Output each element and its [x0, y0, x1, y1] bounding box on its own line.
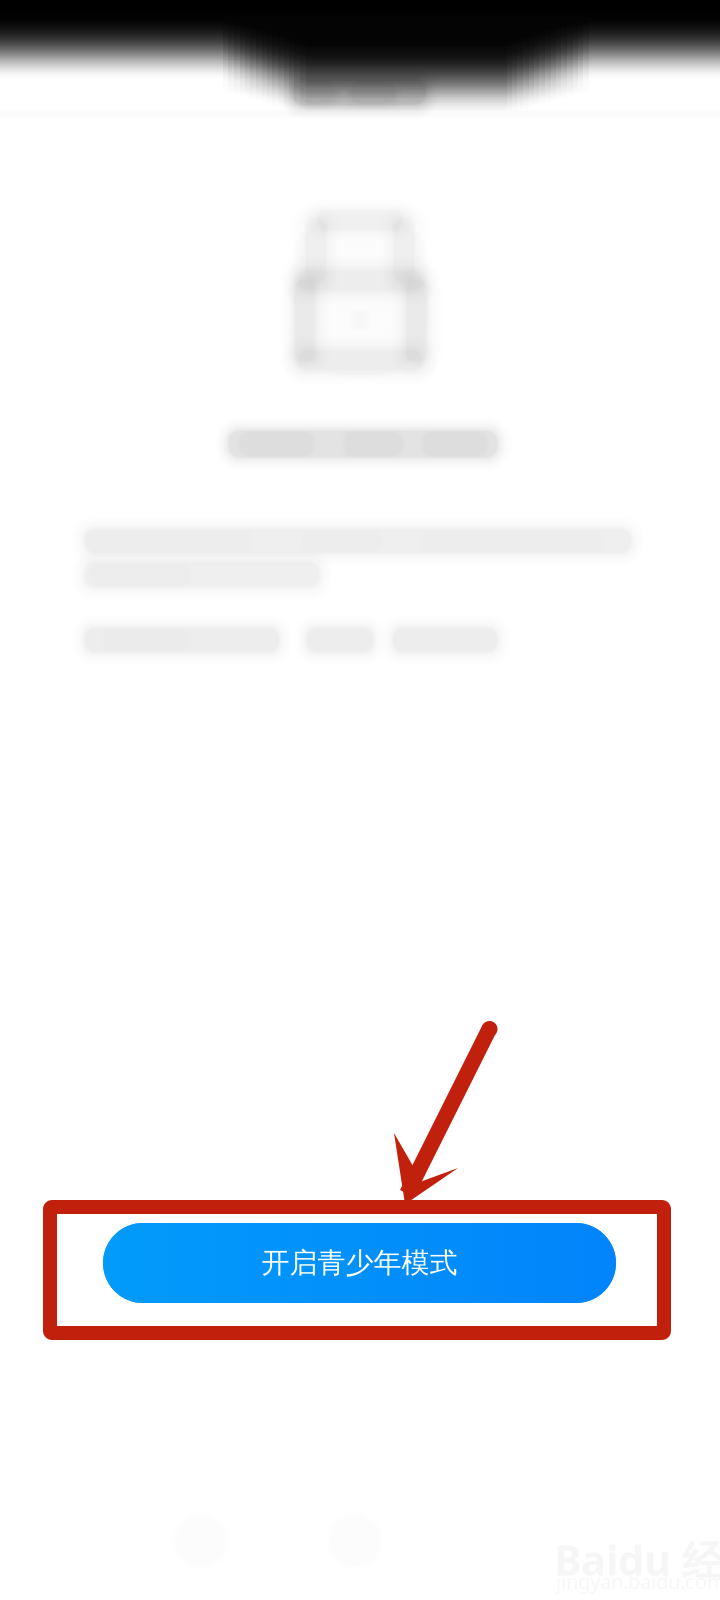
button[interactable]: 开启青少年模式 [103, 1223, 616, 1303]
staticText: jingyan.baidu.com [556, 1568, 720, 1595]
staticText: 开启青少年模式 [261, 1246, 457, 1280]
staticText: Baidu 经验 [554, 1532, 720, 1587]
